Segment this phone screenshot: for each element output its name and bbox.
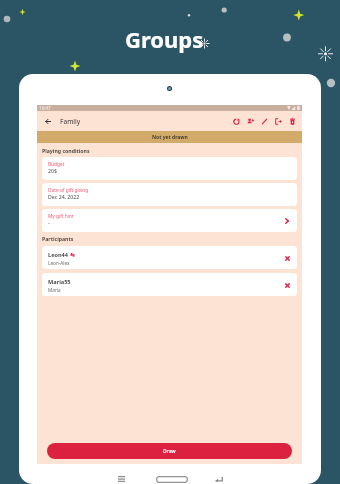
button[interactable]: Family	[60, 117, 81, 126]
staticText: Dec 24, 2022	[48, 193, 80, 200]
button[interactable]: Draw	[47, 443, 292, 459]
staticText: Draw	[163, 448, 176, 455]
staticText: Playing conditions	[42, 147, 90, 154]
button[interactable]: Add person	[243, 114, 257, 128]
staticText: Maria	[48, 287, 61, 293]
staticText: 10:47	[39, 105, 51, 111]
button[interactable]: Not yet drawn	[37, 131, 302, 143]
staticText: -	[48, 219, 50, 226]
button[interactable]: Delete	[285, 114, 299, 128]
button[interactable]: Maria55	[42, 273, 297, 296]
staticText: Maria55	[48, 278, 71, 286]
staticText: Budget	[48, 161, 65, 168]
button[interactable]: Leon44	[42, 246, 297, 269]
button[interactable]: Back	[212, 472, 226, 484]
button[interactable]: Refresh	[229, 114, 243, 128]
staticText: Leon44	[48, 251, 68, 259]
staticText: Groups	[125, 24, 204, 54]
button[interactable]: Recents	[114, 472, 128, 484]
button[interactable]: Home	[154, 470, 190, 484]
staticText: My gift hint	[48, 213, 74, 220]
button[interactable]: Edit	[257, 114, 271, 128]
staticText: Date of gift giving	[48, 187, 89, 194]
button[interactable]: Remove Maria55	[280, 278, 294, 292]
button[interactable]: Back	[39, 113, 56, 130]
staticText: Participants	[42, 235, 74, 242]
button[interactable]: Leave	[271, 114, 285, 128]
other: Back	[45, 119, 51, 124]
button[interactable]: Remove Leon44	[280, 251, 294, 265]
staticText: Leon-Alex	[48, 260, 70, 266]
button[interactable]: Budget	[42, 157, 297, 180]
button[interactable]: My gift hint	[42, 209, 297, 232]
staticText: Not yet drawn	[152, 134, 188, 141]
button[interactable]: Open gift hint	[280, 214, 294, 228]
button[interactable]: Date of gift giving	[42, 183, 297, 206]
staticText: 20$	[48, 167, 57, 174]
